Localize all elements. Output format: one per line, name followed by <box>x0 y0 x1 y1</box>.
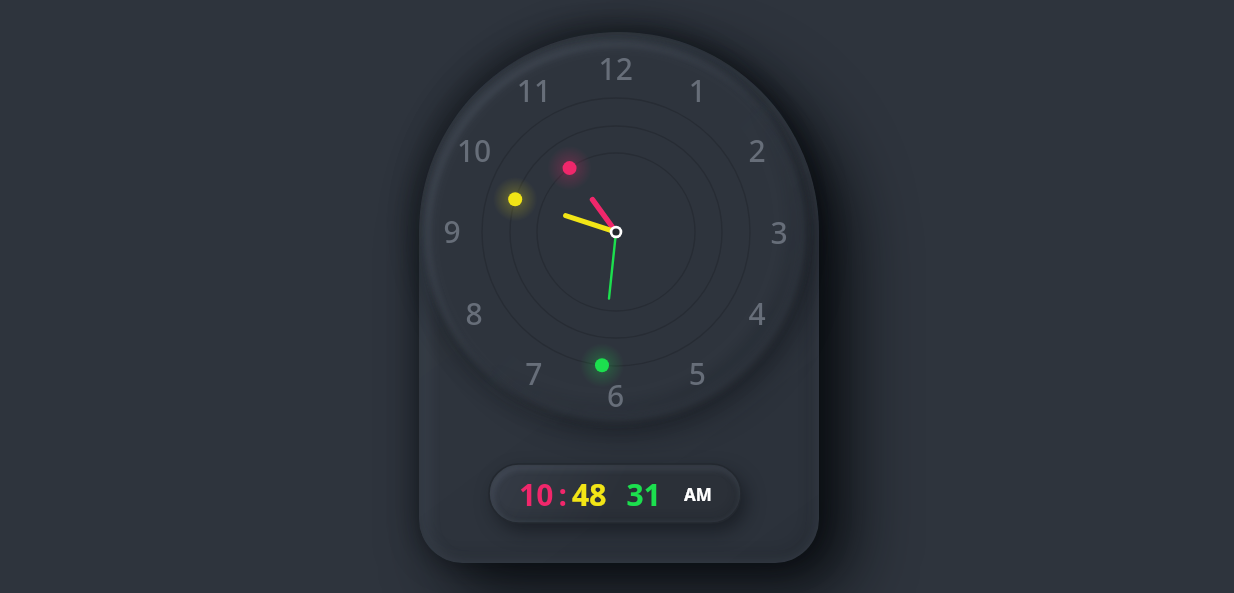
button[interactable]: Neumorphic analog clock <box>0 0 1234 593</box>
